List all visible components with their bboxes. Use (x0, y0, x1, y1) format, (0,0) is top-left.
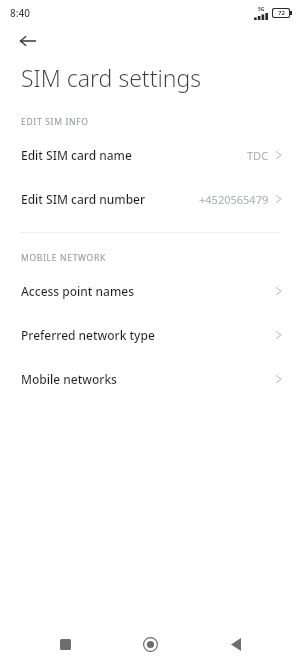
staticText: 5G (258, 6, 265, 13)
staticText: 72 (278, 9, 285, 17)
button[interactable]: Edit SIM card number (0, 177, 300, 221)
button[interactable]: Mobile networks (0, 357, 300, 401)
staticText: Edit SIM card number (21, 191, 146, 207)
staticText: Mobile networks (21, 371, 117, 387)
staticText: Edit SIM card name (21, 147, 132, 163)
button[interactable]: Recent apps (44, 623, 86, 665)
staticText: 8:40 (10, 6, 30, 20)
button[interactable]: Preferred network type (0, 313, 300, 357)
button[interactable]: Access point names (0, 269, 300, 313)
staticText: SIM card settings (21, 62, 202, 93)
button[interactable]: Back (215, 623, 257, 665)
staticText: TDC (247, 148, 269, 163)
staticText: EDIT SIM INFO (21, 116, 89, 128)
staticText: MOBILE NETWORK (21, 252, 106, 264)
button[interactable]: Back (14, 27, 42, 55)
button[interactable]: Home (129, 623, 171, 665)
button[interactable]: Edit SIM card name (0, 133, 300, 177)
staticText: +4520565479 (199, 192, 269, 207)
staticText: Preferred network type (21, 327, 155, 343)
staticText: Access point names (21, 283, 135, 299)
